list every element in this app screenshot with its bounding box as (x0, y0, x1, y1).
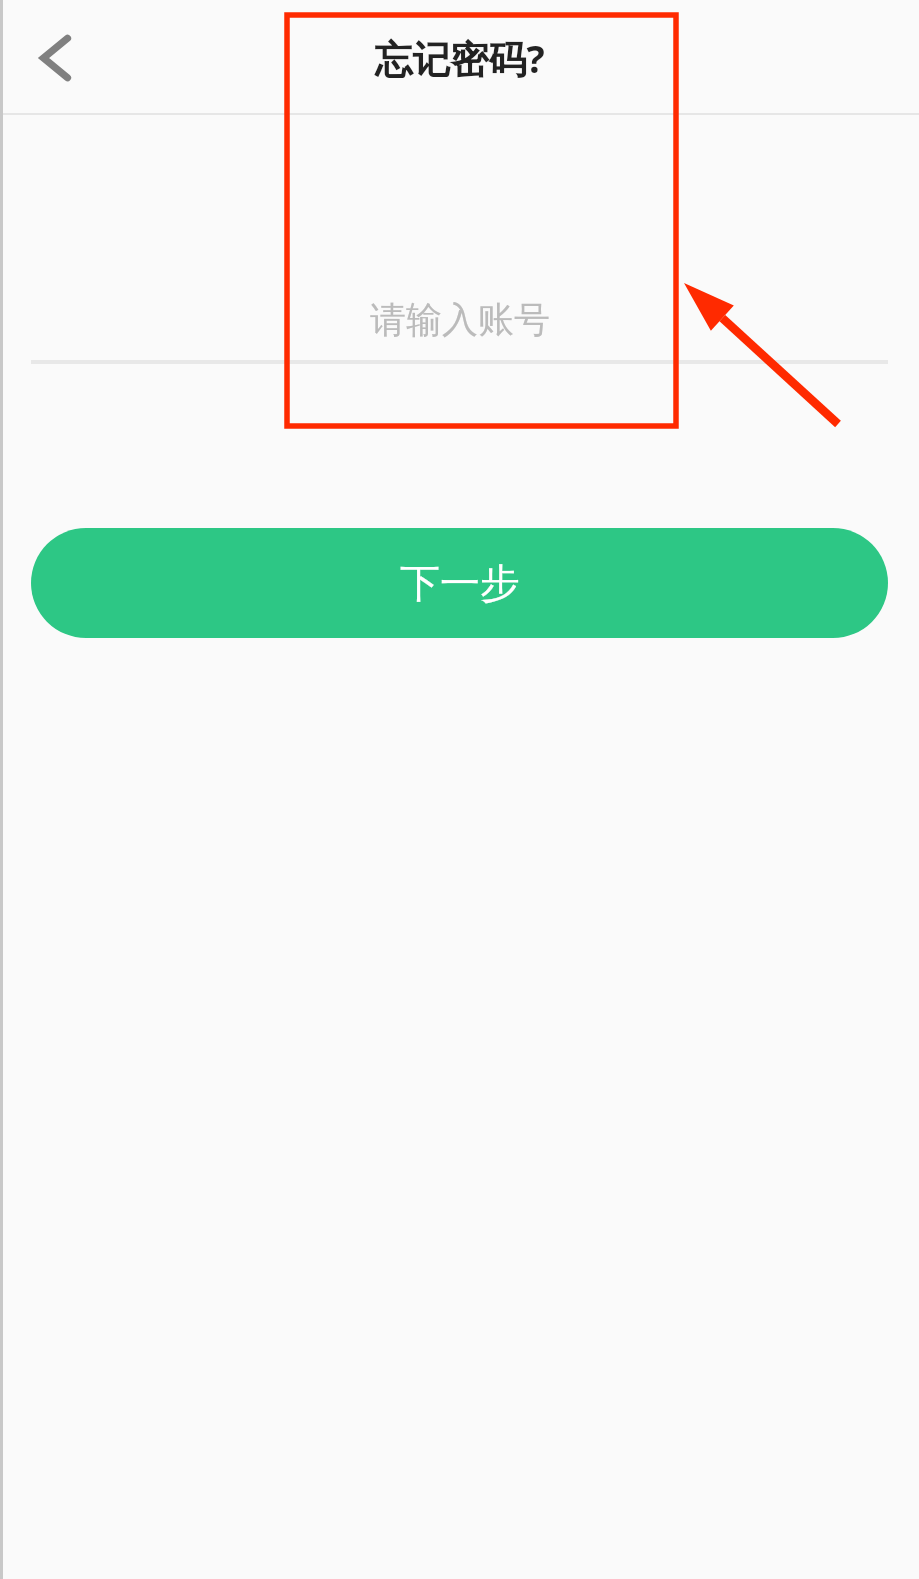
button[interactable]: Back (0, 2, 112, 114)
button[interactable]: 请输入账号 (31, 115, 888, 364)
staticText: 请输入账号 (370, 297, 550, 342)
button[interactable]: 下一步 (31, 528, 888, 638)
staticText: 下一步 (400, 558, 520, 608)
staticText: 忘记密码? (374, 32, 545, 84)
